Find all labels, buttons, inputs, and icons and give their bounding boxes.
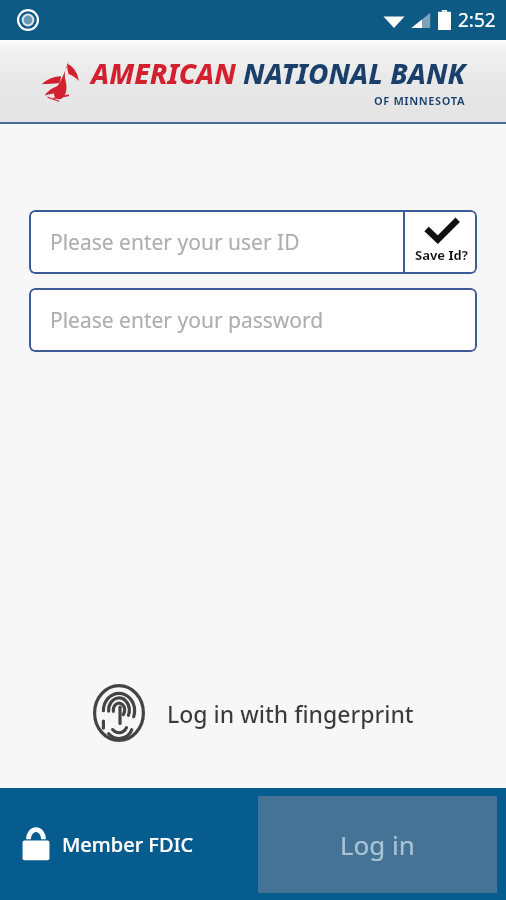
staticText: Log in with fingerprint — [167, 698, 414, 729]
staticText: Please enter your password — [50, 306, 324, 335]
button[interactable]: Please enter your user ID — [29, 210, 403, 274]
button[interactable]: Log in — [258, 796, 497, 893]
button[interactable]: Save Id — [405, 210, 477, 274]
staticText: OF MINNESOTA — [374, 93, 466, 108]
staticText: Please enter your user ID — [50, 228, 300, 257]
button[interactable]: Please enter your password — [29, 288, 477, 352]
staticText: 2:52 — [458, 7, 496, 33]
staticText: AMERICAN — [91, 54, 236, 92]
button[interactable]: Log in with fingerprint — [0, 684, 506, 742]
staticText: Save Id? — [415, 246, 468, 264]
staticText: NATIONAL BANK — [243, 54, 466, 92]
button[interactable]: Member FDIC — [22, 827, 194, 861]
staticText: Log in — [340, 827, 415, 862]
staticText: Member FDIC — [62, 831, 194, 858]
